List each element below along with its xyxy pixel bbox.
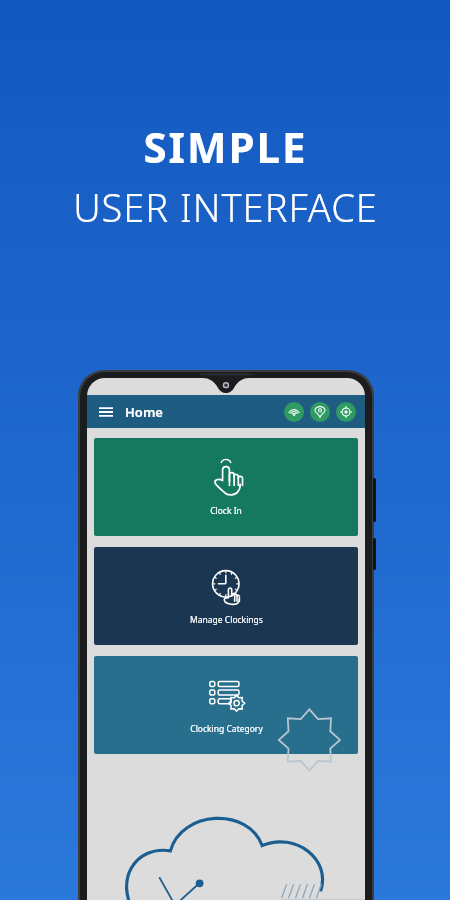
button[interactable]: Clocking Category xyxy=(94,656,358,754)
staticText: Manage Clockings xyxy=(190,614,263,626)
staticText: Clocking Category xyxy=(190,723,263,735)
staticText: Clock In xyxy=(210,505,242,517)
button[interactable]: Location xyxy=(310,402,330,422)
staticText: Home xyxy=(125,403,163,421)
button[interactable]: Manage Clockings xyxy=(94,547,358,645)
button[interactable]: Clock In xyxy=(94,438,358,536)
button[interactable]: Wifi xyxy=(284,402,304,422)
staticText: USER INTERFACE xyxy=(73,181,378,233)
button[interactable]: GPS xyxy=(336,402,356,422)
button[interactable]: Open menu xyxy=(96,402,116,422)
staticText: SIMPLE xyxy=(143,118,308,175)
